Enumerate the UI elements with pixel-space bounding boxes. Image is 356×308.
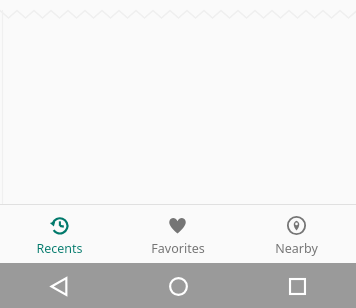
staticText: Recents	[36, 240, 83, 257]
staticText: Favorites	[151, 240, 205, 257]
button[interactable]: Favorites	[118, 205, 237, 263]
button[interactable]: Back	[39, 266, 79, 306]
button[interactable]: Recents	[0, 205, 118, 263]
staticText: Nearby	[275, 240, 318, 257]
button[interactable]: Nearby	[237, 205, 356, 263]
button[interactable]: Recent apps	[277, 266, 317, 306]
button[interactable]: Home	[158, 266, 198, 306]
